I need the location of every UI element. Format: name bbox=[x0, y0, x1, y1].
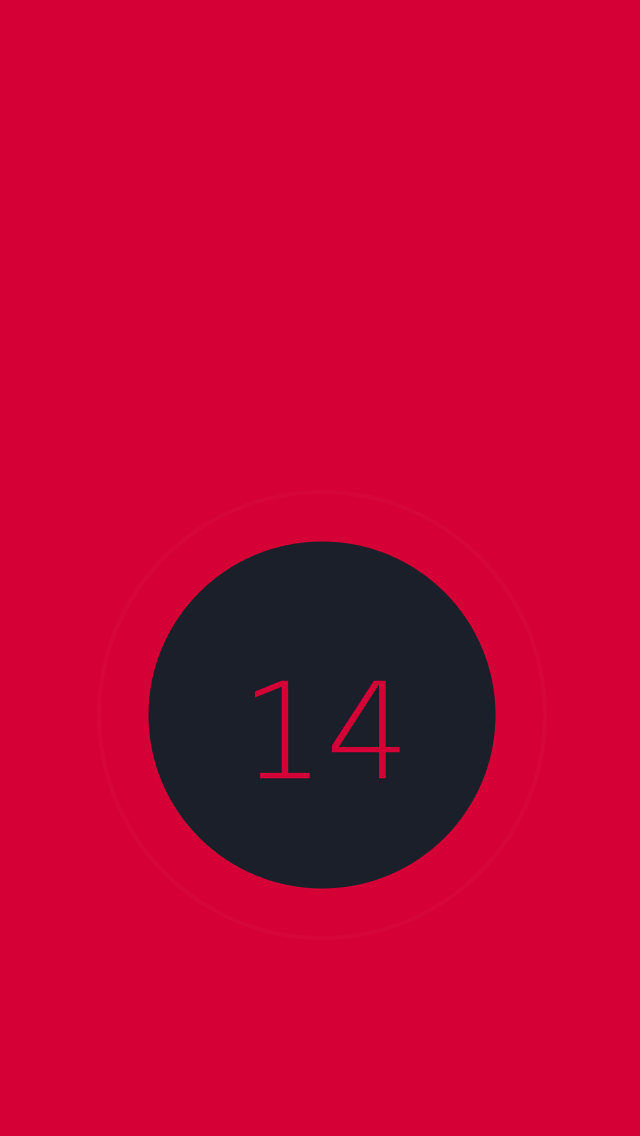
staticText: 14 bbox=[240, 654, 410, 810]
button[interactable]: 14 remaining bbox=[148, 541, 495, 888]
